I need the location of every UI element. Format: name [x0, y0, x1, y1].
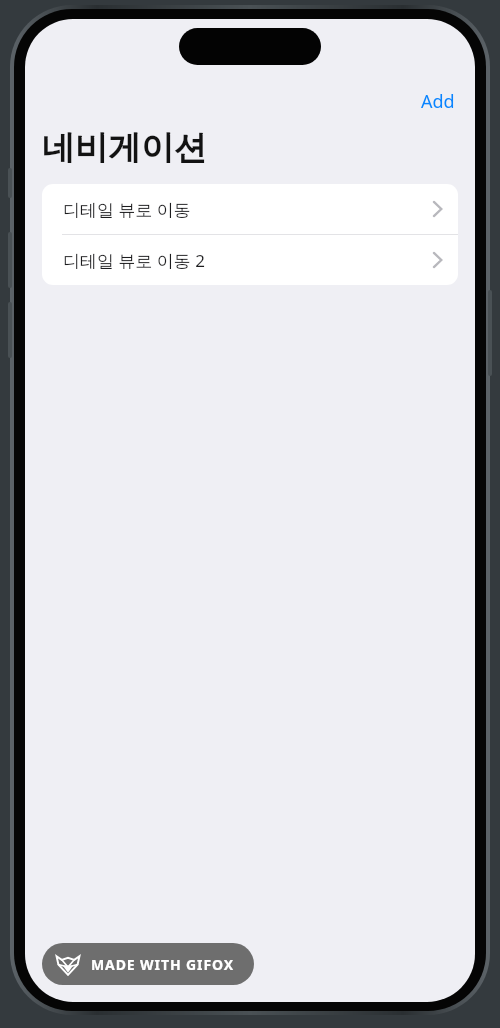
other: Open detail view	[433, 252, 442, 268]
button[interactable]: 디테일 뷰로 이동	[42, 184, 458, 234]
staticText: MADE WITH GIFOX	[91, 955, 234, 974]
button[interactable]: Add	[415, 85, 461, 118]
button[interactable]: 디테일 뷰로 이동 2	[42, 235, 458, 285]
other: Open detail view	[433, 201, 442, 217]
button[interactable]: MADE WITH GIFOX	[42, 943, 254, 985]
staticText: 네비게이션	[42, 127, 207, 169]
staticText: 디테일 뷰로 이동 2	[63, 249, 433, 272]
staticText: 디테일 뷰로 이동	[63, 198, 433, 221]
staticText: Add	[421, 89, 455, 114]
